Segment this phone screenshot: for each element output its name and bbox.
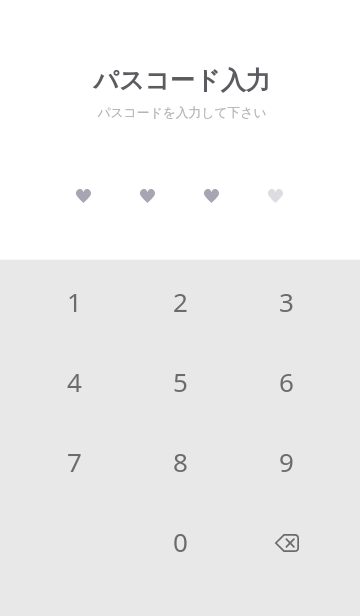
button[interactable]: Delete <box>233 501 339 581</box>
staticText: 3 <box>279 284 294 319</box>
button[interactable]: 3 <box>233 261 339 341</box>
button[interactable]: 4 <box>21 341 127 421</box>
staticText: 5 <box>173 364 188 399</box>
button[interactable]: 5 <box>127 341 233 421</box>
staticText: 4 <box>67 364 82 399</box>
staticText: 9 <box>279 444 294 479</box>
button[interactable]: 7 <box>21 421 127 501</box>
button[interactable]: 2 <box>127 261 233 341</box>
staticText: 8 <box>173 444 188 479</box>
staticText: パスコードを入力して下さい <box>97 105 267 121</box>
staticText: 2 <box>173 284 188 319</box>
staticText: 0 <box>173 524 188 559</box>
staticText: 6 <box>279 364 294 399</box>
button[interactable]: 8 <box>127 421 233 501</box>
button[interactable]: 1 <box>21 261 127 341</box>
button[interactable]: 6 <box>233 341 339 421</box>
staticText: 7 <box>67 444 82 479</box>
staticText: 1 <box>67 284 82 319</box>
staticText: パスコード入力 <box>93 65 271 96</box>
button[interactable]: 0 <box>127 501 233 581</box>
button[interactable]: 9 <box>233 421 339 501</box>
